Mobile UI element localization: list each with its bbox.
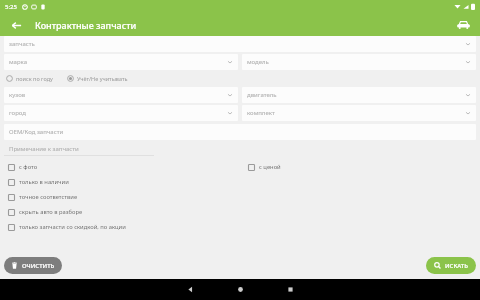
staticText: ИСКАТЬ: [445, 262, 468, 270]
button[interactable]: ИСКАТЬ: [426, 257, 476, 274]
button[interactable]: марка: [4, 54, 238, 70]
button[interactable]: Home: [227, 279, 253, 300]
button[interactable]: Back: [7, 16, 25, 34]
staticText: поиск по году: [16, 75, 53, 82]
staticText: город: [9, 109, 227, 117]
button[interactable]: комплект: [242, 105, 476, 121]
staticText: Контрактные запчасти: [35, 19, 137, 31]
button[interactable]: ОЕМ/Код запчасти: [4, 124, 476, 140]
button[interactable]: модель: [242, 54, 476, 70]
button[interactable]: скрыть авто в разборе: [0, 207, 89, 217]
staticText: модель: [247, 58, 465, 66]
staticText: двигатель: [247, 91, 465, 99]
button[interactable]: Recents: [277, 279, 303, 300]
button[interactable]: город: [4, 105, 238, 121]
button[interactable]: запчасть: [4, 36, 476, 52]
button[interactable]: Back: [177, 279, 203, 300]
staticText: точное соответствие: [19, 193, 78, 201]
staticText: только в наличии: [19, 178, 69, 186]
button[interactable]: кузов: [4, 87, 238, 103]
staticText: с фото: [19, 163, 38, 171]
button[interactable]: только запчасти со скидкой, по акции: [0, 222, 132, 232]
staticText: ОЕМ/Код запчасти: [9, 128, 64, 136]
button[interactable]: ОЧИСТИТЬ: [4, 257, 62, 274]
button[interactable]: только в наличии: [0, 177, 75, 187]
staticText: скрыть авто в разборе: [19, 208, 83, 216]
button[interactable]: Примечание к запчасти: [4, 142, 476, 156]
button[interactable]: поиск по году: [4, 75, 55, 82]
staticText: запчасть: [9, 40, 465, 48]
button[interactable]: Car: [453, 15, 473, 35]
button[interactable]: с фото: [0, 162, 44, 172]
staticText: Учёт/Не учитывать: [77, 75, 128, 82]
staticText: комплект: [247, 109, 465, 117]
staticText: ОЧИСТИТЬ: [22, 262, 55, 270]
staticText: марка: [9, 58, 227, 66]
staticText: Примечание к запчасти: [9, 145, 79, 153]
button[interactable]: точное соответствие: [0, 192, 84, 202]
staticText: только запчасти со скидкой, по акции: [19, 223, 126, 231]
button[interactable]: двигатель: [242, 87, 476, 103]
staticText: 5:25: [5, 3, 17, 11]
staticText: кузов: [9, 91, 227, 99]
staticText: с ценой: [259, 163, 281, 171]
button[interactable]: с ценой: [240, 162, 287, 172]
button[interactable]: Учёт/Не учитывать: [65, 75, 130, 82]
